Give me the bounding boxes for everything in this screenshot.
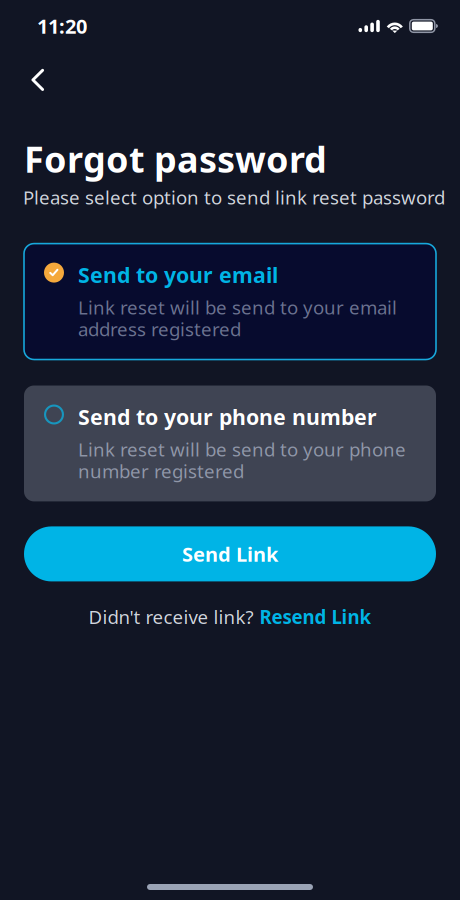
staticText: Didn't receive link? [88, 604, 253, 629]
button[interactable]: Back [0, 61, 75, 99]
staticText: Send Link [182, 541, 278, 567]
staticText: Send to your phone number [78, 402, 377, 431]
button[interactable]: Send to your email [24, 244, 436, 359]
staticText: Link reset will be send to your email [78, 295, 397, 320]
staticText: Please select option to send link reset … [23, 185, 445, 210]
button[interactable]: Send to your phone number [24, 385, 436, 501]
staticText: address registered [78, 317, 241, 341]
staticText: number registered [78, 459, 244, 483]
staticText: Link reset will be send to your phone [78, 437, 406, 462]
staticText: 11:20 [37, 13, 87, 39]
staticText: Resend Link [259, 604, 371, 629]
staticText: Forgot password [24, 135, 327, 183]
button[interactable]: Send Link [0, 526, 460, 581]
staticText: Send to your email [78, 261, 278, 289]
button[interactable]: Resend Link [259, 604, 371, 629]
